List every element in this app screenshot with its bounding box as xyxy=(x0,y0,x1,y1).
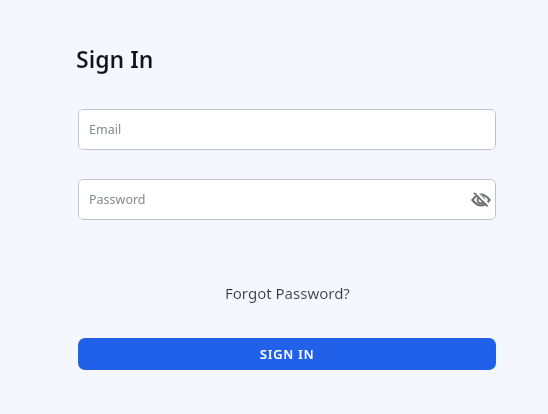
staticText: Password xyxy=(89,191,146,208)
staticText: Sign In xyxy=(76,43,154,74)
button[interactable]: Password xyxy=(78,179,496,220)
button[interactable]: Forgot Password? xyxy=(225,283,350,303)
staticText: Forgot Password? xyxy=(225,283,350,303)
button[interactable] xyxy=(470,189,492,211)
button[interactable]: SIGN IN xyxy=(78,338,496,370)
staticText: SIGN IN xyxy=(260,346,315,363)
button[interactable]: Email xyxy=(78,109,496,150)
staticText: Email xyxy=(89,121,122,138)
